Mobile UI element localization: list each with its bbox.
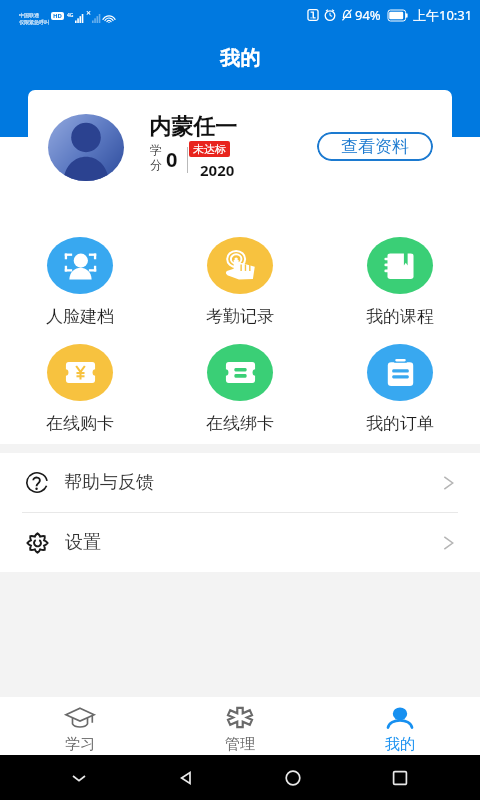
staticText: 我的: [220, 46, 260, 71]
staticText: 0: [166, 146, 178, 173]
staticText: 上午10:31: [413, 6, 473, 24]
staticText: 94%: [355, 6, 381, 24]
staticText: 未达标: [193, 142, 226, 156]
staticText: 中国联通: [19, 12, 39, 18]
button[interactable]: 我的订单: [320, 344, 480, 434]
staticText: 我的订单: [366, 413, 434, 434]
button[interactable]: 管理: [160, 698, 320, 754]
staticText: 人脸建档: [46, 306, 114, 327]
staticText: HD: [53, 12, 62, 20]
staticText: 内蒙任一: [149, 113, 237, 141]
staticText: ✕: [86, 9, 92, 16]
button[interactable]: 我的课程: [320, 237, 480, 327]
button[interactable]: 内蒙任一: [28, 90, 452, 204]
button[interactable]: 考勤记录: [160, 237, 320, 327]
staticText: 考勤记录: [206, 306, 274, 327]
staticText: 帮助与反馈: [64, 471, 154, 494]
staticText: 分: [150, 157, 162, 172]
button[interactable]: 学习: [0, 698, 160, 754]
staticText: 我的: [385, 735, 415, 754]
staticText: 4G: [67, 12, 74, 19]
button[interactable]: 在线购卡: [0, 344, 160, 434]
button[interactable]: 查看资料: [317, 132, 433, 161]
button[interactable]: 设置: [0, 513, 480, 572]
staticText: 我的课程: [366, 306, 434, 327]
staticText: 查看资料: [341, 136, 409, 157]
staticText: 在线购卡: [46, 413, 114, 434]
staticText: 仅限紧急呼叫: [19, 19, 49, 25]
button[interactable]: 我的: [320, 698, 480, 754]
staticText: 学习: [65, 735, 95, 754]
button[interactable]: 在线绑卡: [160, 344, 320, 434]
staticText: 2020: [200, 160, 235, 180]
staticText: 管理: [225, 735, 255, 754]
staticText: 设置: [65, 531, 101, 554]
staticText: 学: [150, 142, 162, 157]
button[interactable]: 人脸建档: [0, 237, 160, 327]
button[interactable]: 帮助与反馈: [0, 453, 480, 512]
staticText: 在线绑卡: [206, 413, 274, 434]
